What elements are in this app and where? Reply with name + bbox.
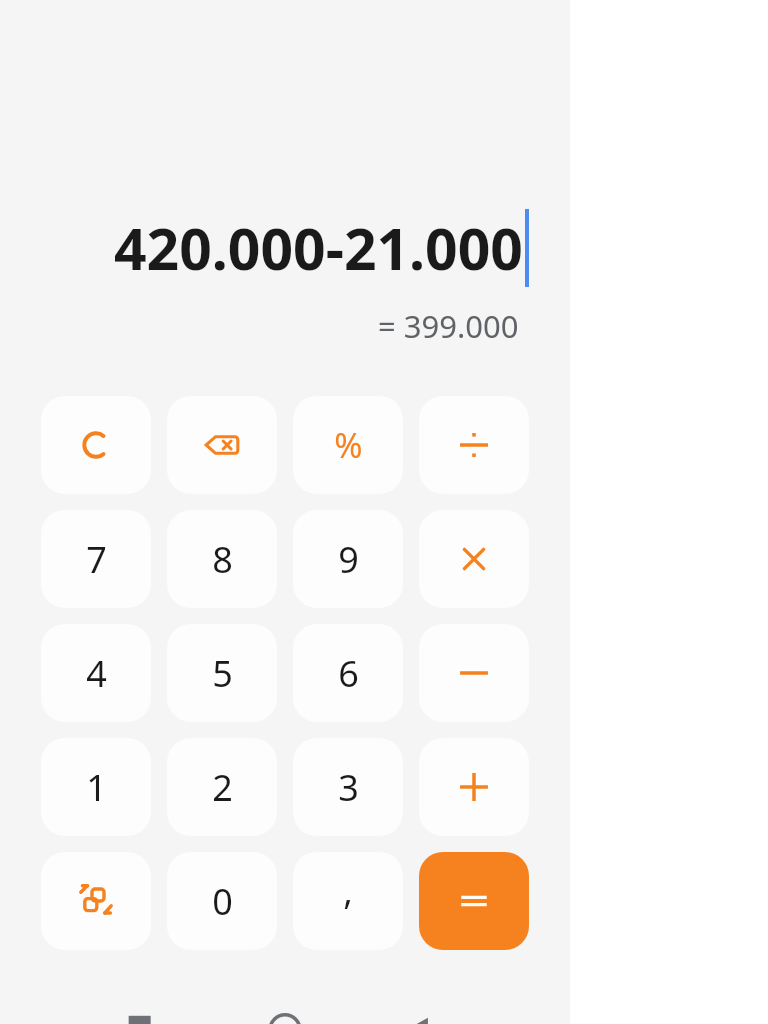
staticText: 6 [338, 649, 359, 698]
staticText: 9 [338, 535, 359, 584]
button[interactable]: Clear [41, 396, 151, 494]
button[interactable]: 6 [293, 624, 403, 722]
button[interactable]: 1 [41, 738, 151, 836]
button[interactable]: 4 [41, 624, 151, 722]
button[interactable]: Divide [419, 396, 529, 494]
button[interactable]: % [293, 396, 403, 494]
button[interactable]: Multiply [419, 510, 529, 608]
staticText: 5 [212, 649, 233, 698]
button[interactable]: 2 [167, 738, 277, 836]
button[interactable]: 7 [41, 510, 151, 608]
button[interactable]: Backspace [167, 396, 277, 494]
button[interactable]: Unit converter [41, 852, 151, 950]
button[interactable]: Minus [419, 624, 529, 722]
staticText: 1 [86, 763, 107, 812]
staticText: , [343, 866, 353, 915]
staticText: 2 [212, 763, 233, 812]
staticText: 420.000-21.000 [114, 209, 523, 287]
button[interactable]: , [293, 852, 403, 950]
button[interactable]: 5 [167, 624, 277, 722]
button[interactable]: 8 [167, 510, 277, 608]
staticText: 0 [212, 877, 233, 926]
button[interactable]: 3 [293, 738, 403, 836]
button[interactable]: 0 [167, 852, 277, 950]
staticText: 7 [86, 535, 107, 584]
staticText: 3 [338, 763, 359, 812]
button[interactable]: 9 [293, 510, 403, 608]
staticText: = 399.000 [378, 305, 519, 347]
staticText: 8 [212, 535, 233, 584]
staticText: 4 [86, 649, 107, 698]
staticText: % [334, 422, 363, 468]
button[interactable]: Plus [419, 738, 529, 836]
button[interactable]: Equals [419, 852, 529, 950]
